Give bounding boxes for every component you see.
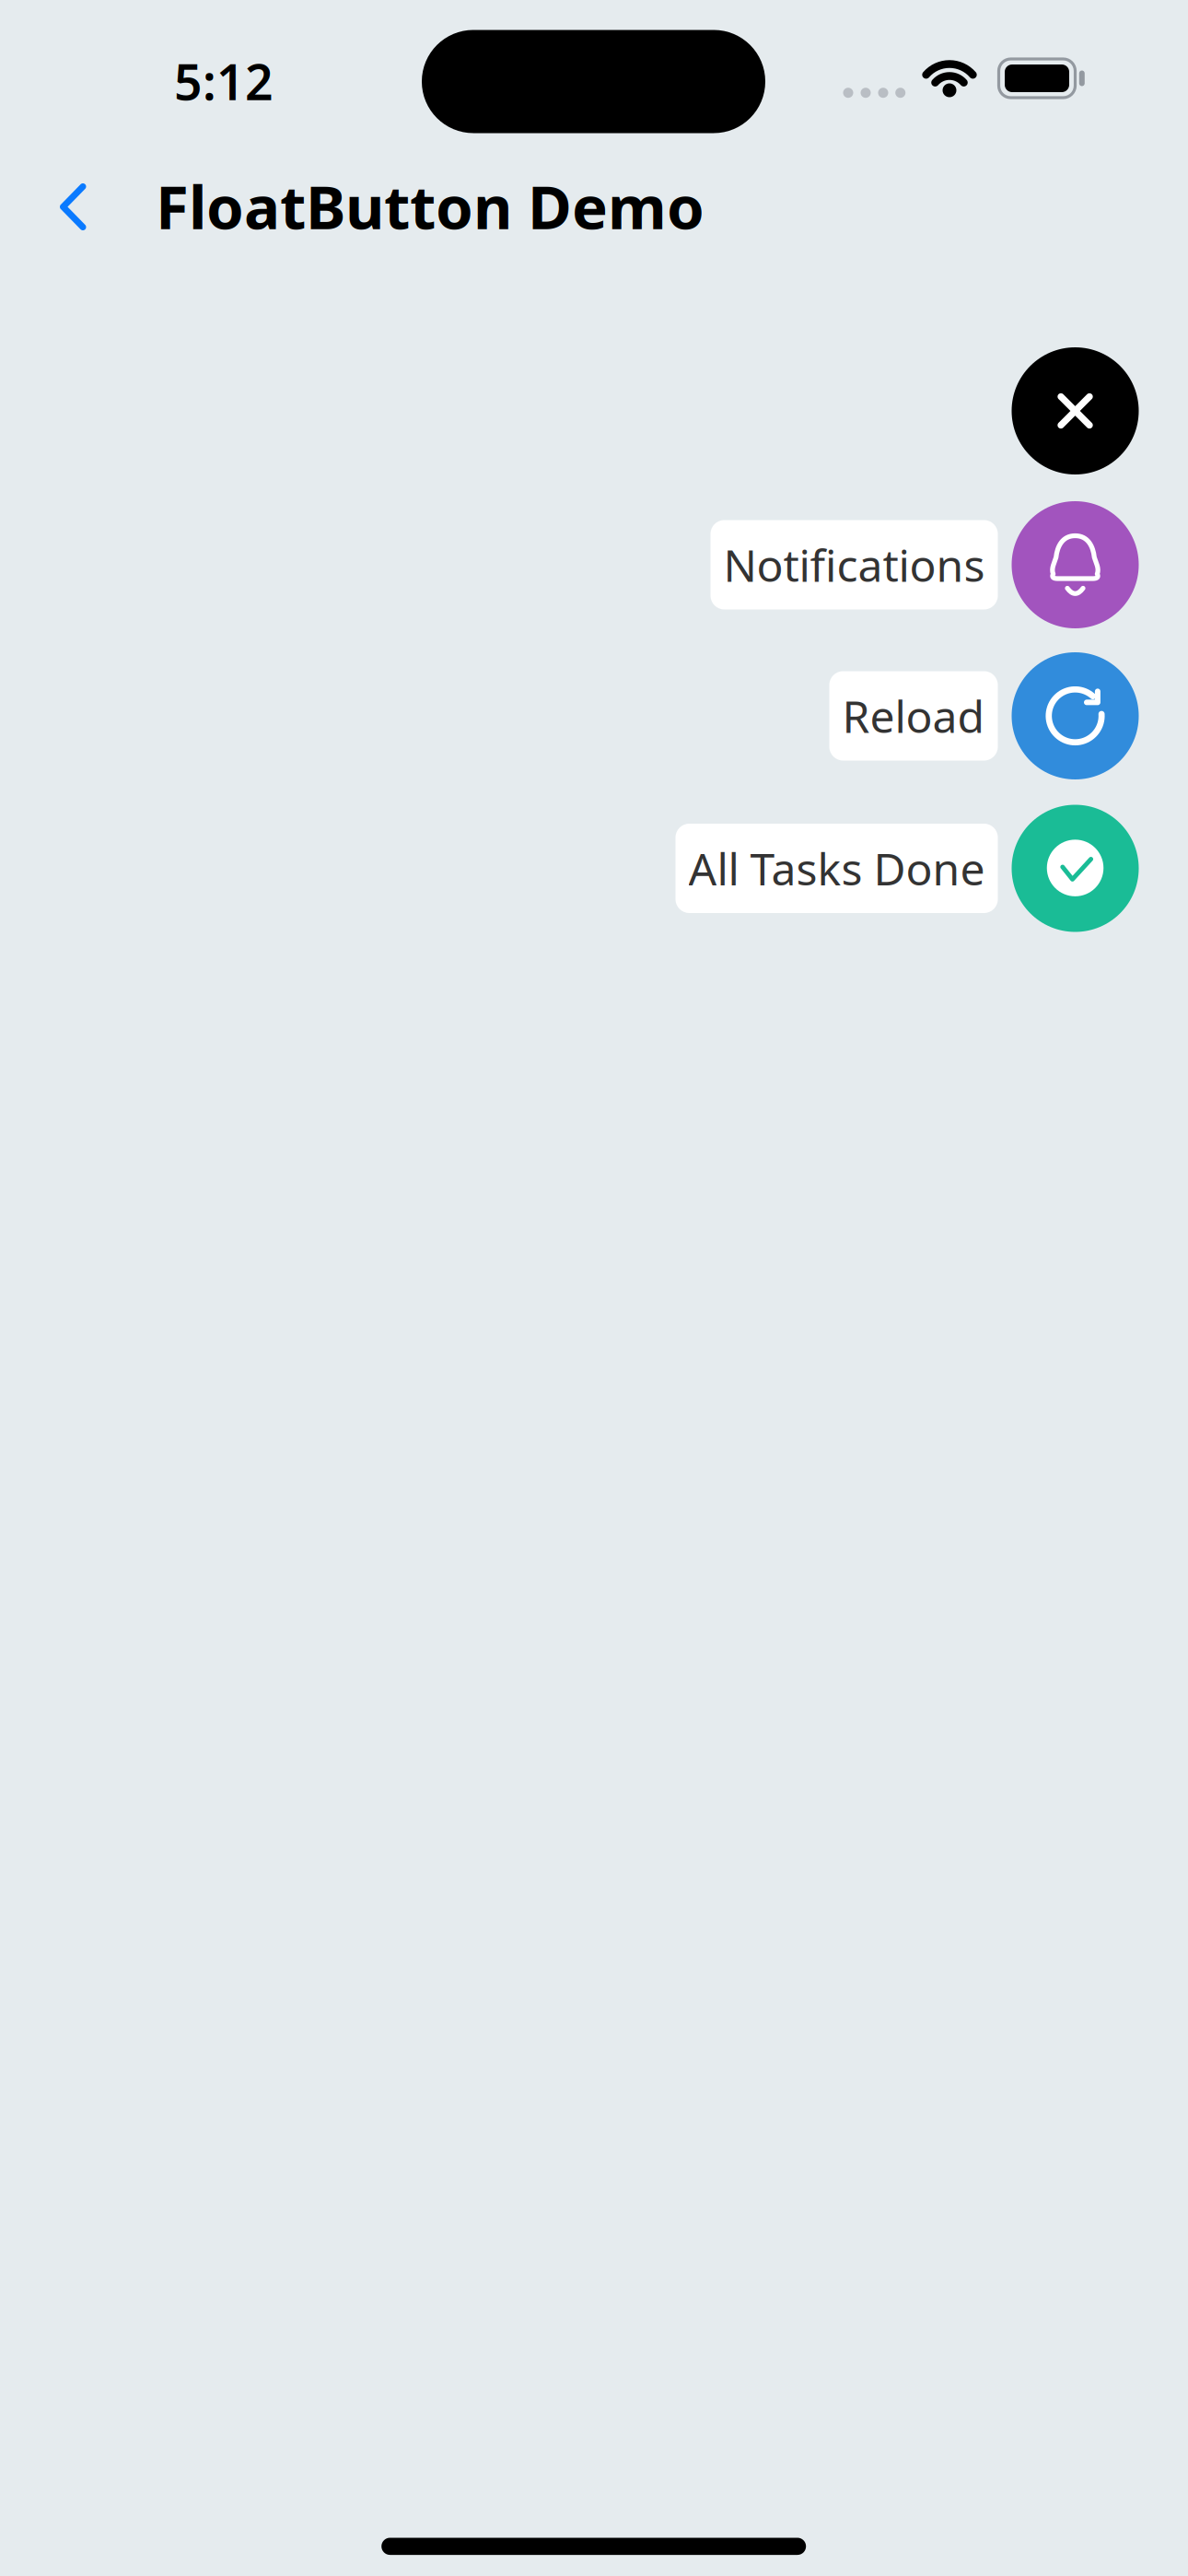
- staticText: Reload: [842, 686, 985, 745]
- staticText: 5:12: [174, 48, 274, 114]
- button[interactable]: Notifications: [710, 501, 1139, 628]
- button[interactable]: Back: [46, 178, 99, 236]
- staticText: FloatButton Demo: [156, 166, 705, 246]
- button[interactable]: Close: [1012, 347, 1139, 474]
- staticText: Notifications: [723, 535, 985, 594]
- button[interactable]: All Tasks Done: [676, 805, 1139, 932]
- button[interactable]: Reload: [829, 652, 1139, 779]
- staticText: All Tasks Done: [688, 839, 985, 898]
